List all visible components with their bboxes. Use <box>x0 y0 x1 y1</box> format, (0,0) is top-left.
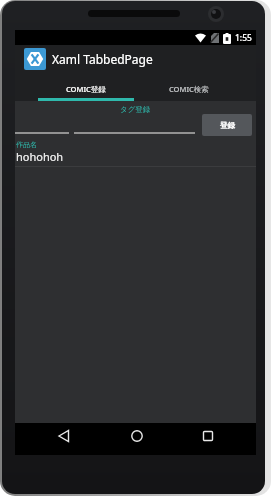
staticText: Xaml TabbedPage <box>52 51 153 67</box>
button[interactable]: 作品名 <box>15 140 256 167</box>
button[interactable]: COMIC登録 <box>34 77 137 101</box>
staticText: 1:55 <box>235 32 252 44</box>
button[interactable] <box>125 421 149 451</box>
staticText: COMIC検索 <box>169 84 209 94</box>
staticText: 登録 <box>220 121 235 130</box>
staticText: タグ登録 <box>120 105 151 114</box>
button[interactable]: COMIC検索 <box>137 77 240 101</box>
staticText: 作品名 <box>16 140 37 149</box>
button[interactable] <box>24 48 46 70</box>
button[interactable]: 登録 <box>202 114 252 136</box>
staticText: COMIC登録 <box>66 84 106 94</box>
button[interactable] <box>196 421 220 451</box>
button[interactable] <box>52 421 76 451</box>
staticText: hohohoh <box>16 149 64 164</box>
